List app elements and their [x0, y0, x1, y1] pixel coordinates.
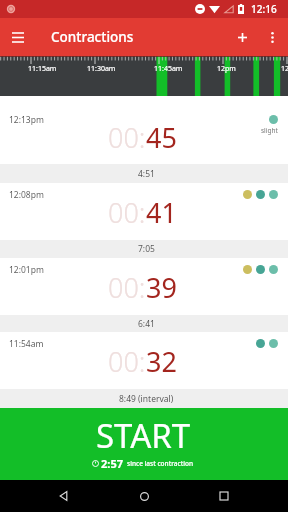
staticText: 12:01pm [9, 264, 44, 276]
button[interactable]: Menu [4, 23, 32, 51]
button[interactable]: 11:54am [0, 332, 288, 389]
staticText: since last contraction [127, 459, 193, 468]
staticText: 4:51 [138, 168, 155, 180]
button[interactable]: Add [227, 22, 257, 52]
staticText: 41 [146, 194, 177, 231]
staticText: 12:13pm [9, 114, 44, 126]
staticText: 12:08pm [9, 189, 44, 201]
staticText: 00: [108, 343, 146, 380]
staticText: 00: [108, 269, 146, 306]
staticText: 12pm [217, 64, 236, 74]
staticText: 12 [281, 64, 288, 74]
staticText: 8:49 (interval) [119, 393, 174, 405]
button[interactable]: Recents [208, 480, 240, 512]
staticText: 12:16 [251, 2, 277, 16]
button[interactable]: START [0, 408, 288, 480]
staticText: 11:54am [9, 338, 44, 350]
staticText: Contractions [51, 28, 134, 46]
staticText: 45 [146, 119, 177, 156]
staticText: 2:57 [101, 456, 123, 471]
staticText: 11:30am [87, 64, 116, 74]
button[interactable]: 12:08pm [0, 183, 288, 240]
staticText: 00: [108, 119, 146, 156]
staticText: 11:45am [154, 64, 183, 74]
button[interactable]: Back [48, 480, 80, 512]
staticText: 39 [146, 269, 177, 306]
button[interactable]: 12:13pm [0, 96, 288, 164]
staticText: 00: [108, 194, 146, 231]
staticText: 6:41 [138, 318, 155, 330]
staticText: slight [261, 126, 278, 135]
staticText: 11:15am [28, 64, 57, 74]
button[interactable]: More options [257, 22, 287, 52]
button[interactable]: 12:01pm [0, 258, 288, 315]
staticText: 7:05 [138, 243, 155, 255]
staticText: START [96, 413, 191, 458]
staticText: 32 [146, 343, 177, 380]
button[interactable]: Home [128, 480, 160, 512]
